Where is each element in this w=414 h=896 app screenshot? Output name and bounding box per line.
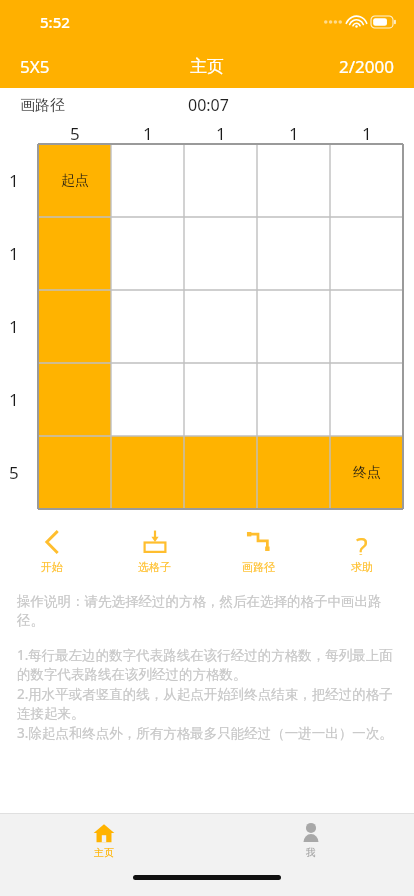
button[interactable]: 我: [207, 814, 414, 866]
button[interactable]: 起点: [38, 144, 111, 217]
button[interactable]: [257, 217, 330, 290]
button[interactable]: [38, 290, 111, 363]
button[interactable]: [184, 363, 257, 436]
button[interactable]: 2/2000: [339, 55, 394, 78]
button[interactable]: 5X5: [20, 55, 50, 78]
button[interactable]: [38, 217, 111, 290]
staticText: 1: [216, 122, 226, 144]
staticText: 1: [362, 122, 372, 144]
button[interactable]: 主页: [0, 814, 207, 866]
other: 画路径: [245, 529, 271, 555]
button[interactable]: [184, 436, 257, 509]
button[interactable]: [257, 363, 330, 436]
staticText: 00:07: [188, 94, 229, 116]
button[interactable]: 开始: [0, 523, 103, 579]
staticText: 5: [70, 122, 80, 144]
staticText: 选格子: [138, 560, 171, 574]
staticText: 开始: [41, 560, 63, 574]
staticText: 1: [9, 388, 19, 411]
button[interactable]: [184, 217, 257, 290]
button[interactable]: [111, 217, 184, 290]
staticText: ?: [356, 529, 368, 555]
staticText: 求助: [351, 560, 373, 574]
staticText: 主页: [94, 846, 114, 859]
button[interactable]: [330, 217, 403, 290]
button[interactable]: [111, 363, 184, 436]
staticText: 我: [306, 846, 316, 859]
button[interactable]: [184, 144, 257, 217]
button[interactable]: 画路径: [206, 523, 310, 579]
staticText: 画路径: [242, 560, 275, 574]
button[interactable]: [330, 363, 403, 436]
staticText: 操作说明：请先选择经过的方格，然后在选择的格子中画出路径。: [17, 593, 397, 629]
staticText: 1.每行最左边的数字代表路线在该行经过的方格数，每列最上面的数字代表路线在该列经…: [17, 646, 397, 742]
staticText: 1: [9, 242, 19, 265]
staticText: 主页: [190, 56, 224, 77]
button[interactable]: [257, 290, 330, 363]
staticText: 画路径: [20, 96, 65, 115]
button[interactable]: [257, 436, 330, 509]
other: 求助: [349, 529, 375, 555]
other: 开始: [39, 529, 65, 555]
button[interactable]: [184, 290, 257, 363]
staticText: 1: [9, 169, 19, 192]
button[interactable]: [257, 144, 330, 217]
other: 选格子: [142, 529, 168, 555]
button[interactable]: [38, 363, 111, 436]
button[interactable]: [111, 144, 184, 217]
staticText: 5:52: [40, 12, 70, 32]
staticText: 起点: [61, 172, 89, 190]
staticText: 5: [9, 461, 19, 484]
staticText: 1: [289, 122, 299, 144]
button[interactable]: 终点: [330, 436, 403, 509]
button[interactable]: [330, 144, 403, 217]
staticText: 终点: [353, 464, 381, 482]
button[interactable]: [330, 290, 403, 363]
button[interactable]: [111, 290, 184, 363]
staticText: 1: [9, 315, 19, 338]
staticText: 1: [143, 122, 153, 144]
button[interactable]: 求助: [310, 523, 414, 579]
button[interactable]: 选格子: [103, 523, 206, 579]
button[interactable]: [111, 436, 184, 509]
button[interactable]: [38, 436, 111, 509]
